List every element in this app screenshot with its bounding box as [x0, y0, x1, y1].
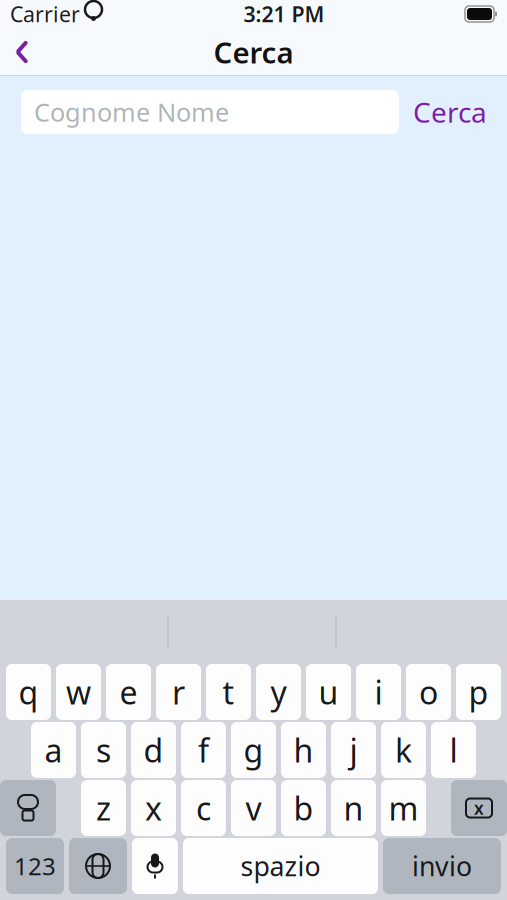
- staticText: e: [119, 671, 137, 713]
- button[interactable]: h: [281, 722, 326, 778]
- button[interactable]: Next keyboard: [69, 838, 127, 894]
- staticText: j: [349, 729, 357, 771]
- staticText: u: [318, 671, 338, 713]
- button[interactable]: j: [331, 722, 376, 778]
- staticText: l: [449, 729, 457, 771]
- button[interactable]: l: [431, 722, 476, 778]
- button[interactable]: x: [131, 780, 176, 836]
- button[interactable]: q: [6, 664, 51, 720]
- staticText: Cerca: [213, 32, 293, 71]
- button[interactable]: g: [231, 722, 276, 778]
- staticText: z: [96, 787, 111, 829]
- staticText: f: [198, 729, 209, 771]
- staticText: k: [395, 729, 412, 771]
- button[interactable]: invio: [383, 838, 501, 894]
- button[interactable]: k: [381, 722, 426, 778]
- button[interactable]: p: [456, 664, 501, 720]
- staticText: c: [196, 787, 211, 829]
- staticText: Cerca: [413, 93, 487, 131]
- button[interactable]: Cerca: [407, 90, 493, 134]
- button[interactable]: z: [81, 780, 126, 836]
- staticText: 3:21 PM: [243, 0, 324, 28]
- staticText: i: [374, 671, 382, 713]
- staticText: q: [18, 671, 38, 713]
- staticText: n: [343, 787, 363, 829]
- button[interactable]: spazio: [183, 838, 378, 894]
- staticText: 123: [14, 850, 56, 882]
- staticText: d: [143, 729, 163, 771]
- button[interactable]: y: [256, 664, 301, 720]
- button[interactable]: i: [356, 664, 401, 720]
- button[interactable]: t: [206, 664, 251, 720]
- button[interactable]: Delete: [451, 780, 507, 836]
- button[interactable]: c: [181, 780, 226, 836]
- button[interactable]: e: [106, 664, 151, 720]
- staticText: b: [293, 787, 313, 829]
- button[interactable]: a: [31, 722, 76, 778]
- staticText: g: [243, 729, 263, 771]
- button[interactable]: m: [381, 780, 426, 836]
- button[interactable]: f: [181, 722, 226, 778]
- button[interactable]: u: [306, 664, 351, 720]
- button[interactable]: Dictation: [132, 838, 178, 894]
- staticText: o: [419, 671, 438, 713]
- button[interactable]: Shift: [0, 780, 56, 836]
- staticText: h: [293, 729, 313, 771]
- staticText: p: [468, 671, 488, 713]
- staticText: [79, 0, 85, 29]
- button[interactable]: o: [406, 664, 451, 720]
- button[interactable]: b: [281, 780, 326, 836]
- staticText: x: [145, 787, 162, 829]
- staticText: Cognome Nome: [34, 95, 229, 129]
- button[interactable]: r: [156, 664, 201, 720]
- staticText: x: [474, 796, 484, 819]
- staticText: a: [44, 729, 62, 771]
- button[interactable]: Back: [0, 30, 44, 74]
- staticText: w: [66, 671, 91, 713]
- button[interactable]: Cognome Nome: [21, 90, 399, 134]
- staticText: m: [388, 787, 418, 829]
- staticText: Carrier: [10, 0, 80, 28]
- staticText: spazio: [240, 848, 320, 884]
- button[interactable]: v: [231, 780, 276, 836]
- button[interactable]: w: [56, 664, 101, 720]
- button[interactable]: d: [131, 722, 176, 778]
- button[interactable]: s: [81, 722, 126, 778]
- staticText: v: [245, 787, 261, 829]
- staticText: invio: [412, 848, 472, 884]
- staticText: r: [172, 671, 185, 713]
- staticText: t: [222, 671, 234, 713]
- button[interactable]: n: [331, 780, 376, 836]
- button[interactable]: 123: [6, 838, 64, 894]
- staticText: s: [96, 729, 111, 771]
- staticText: y: [270, 671, 286, 713]
